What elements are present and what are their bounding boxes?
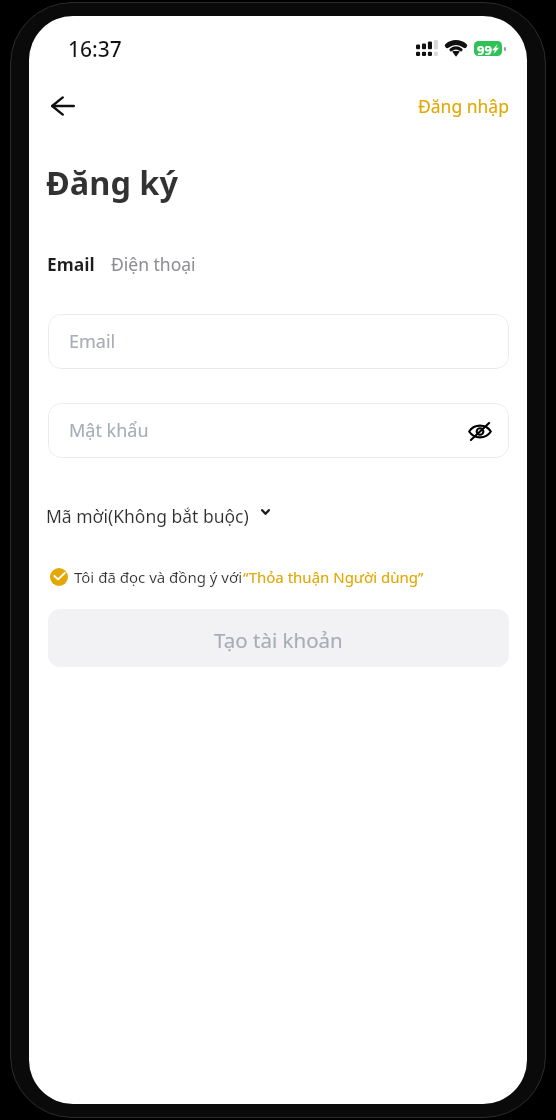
staticText: 99 (477, 41, 492, 56)
staticText: Email (69, 329, 116, 354)
staticText: Đăng nhập (418, 94, 509, 118)
staticText: Điện thoại (111, 252, 196, 276)
staticText: Đăng ký (46, 160, 179, 204)
button[interactable]: Đăng nhập (400, 85, 527, 127)
button[interactable]: Điện thoại (103, 247, 204, 281)
staticText: Tôi đã đọc và đồng ý với (74, 567, 243, 587)
button[interactable]: Tôi đã đọc và đồng ý với (29, 562, 436, 592)
button[interactable]: Back (41, 84, 85, 128)
button[interactable]: Mã mời(Không bắt buộc) (29, 498, 282, 534)
staticText: Mật khẩu (69, 418, 149, 443)
staticText: “Thỏa thuận Người dùng” (243, 567, 424, 587)
button[interactable]: Tạo tài khoản (48, 609, 509, 667)
staticText: Tạo tài khoản (214, 626, 343, 654)
staticText: Mã mời(Không bắt buộc) (46, 504, 249, 528)
button[interactable]: Email (29, 247, 103, 281)
button[interactable]: Mật khẩu (48, 403, 509, 458)
staticText: 16:37 (68, 35, 122, 64)
staticText: Email (47, 252, 95, 276)
button[interactable]: Email (48, 314, 509, 369)
button[interactable]: Show password (465, 416, 495, 446)
